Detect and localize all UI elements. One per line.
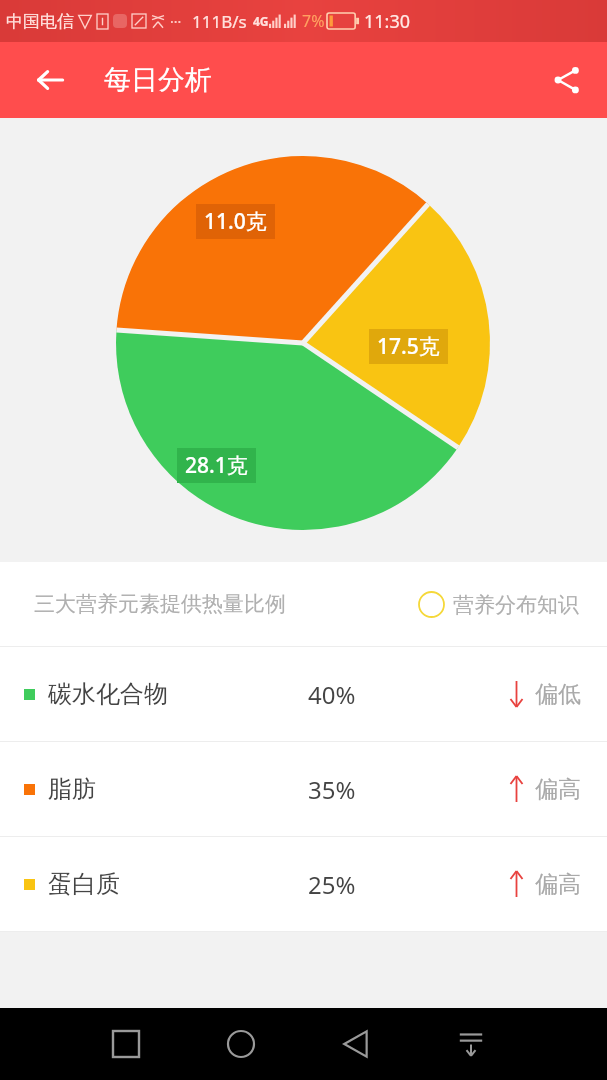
- button[interactable]: 营养分布知识: [416, 587, 581, 622]
- staticText: 17.5克: [377, 332, 440, 361]
- button[interactable]: 脂肪: [0, 742, 607, 836]
- staticText: 4G: [253, 13, 269, 29]
- staticText: 蛋白质: [48, 869, 120, 899]
- button[interactable]: 蛋白质: [0, 837, 607, 931]
- button[interactable]: Recent apps: [90, 1008, 162, 1080]
- button[interactable]: Back: [320, 1008, 392, 1080]
- staticText: ···: [170, 12, 182, 31]
- staticText: 营养分布知识: [453, 592, 579, 618]
- button[interactable]: Back: [22, 52, 78, 108]
- staticText: 11:30: [364, 9, 411, 34]
- staticText: 35%: [308, 773, 508, 806]
- staticText: 碳水化合物: [48, 679, 168, 709]
- staticText: 40%: [308, 678, 508, 711]
- button[interactable]: Hide navigation bar: [435, 1008, 507, 1080]
- staticText: 7%: [302, 10, 325, 32]
- staticText: 11.0克: [204, 207, 267, 236]
- staticText: 28.1克: [185, 451, 248, 480]
- staticText: 偏高: [535, 775, 581, 804]
- staticText: 偏低: [535, 680, 581, 709]
- staticText: 25%: [308, 868, 508, 901]
- staticText: 每日分析: [104, 63, 212, 97]
- button[interactable]: Share: [539, 52, 595, 108]
- button[interactable]: Home: [205, 1008, 277, 1080]
- staticText: 中国电信: [6, 11, 74, 32]
- staticText: 三大营养元素提供热量比例: [34, 591, 286, 617]
- staticText: 111B/s: [192, 10, 247, 33]
- staticText: 偏高: [535, 870, 581, 899]
- button[interactable]: 碳水化合物: [0, 647, 607, 741]
- staticText: 脂肪: [48, 774, 96, 804]
